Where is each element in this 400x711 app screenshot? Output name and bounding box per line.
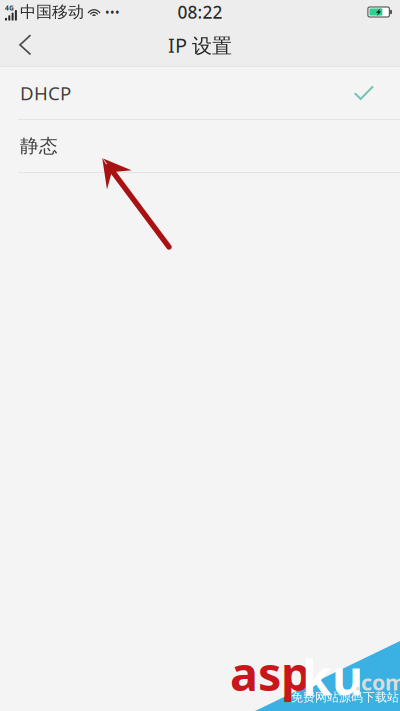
staticText: DHCP [20, 81, 71, 105]
staticText: 08:22 [177, 0, 222, 23]
staticText: IP 设置 [168, 32, 232, 58]
button[interactable]: Back [0, 24, 48, 65]
button[interactable]: 静态 [0, 120, 400, 172]
button[interactable]: DHCP [0, 67, 400, 119]
staticText: .com [355, 668, 400, 696]
staticText: ku [302, 645, 363, 709]
staticText: 免费网站源码下载站 [291, 690, 399, 705]
staticText: ••• [105, 4, 120, 20]
staticText: 静态 [20, 134, 58, 157]
staticText: 4G [5, 3, 14, 12]
staticText: asp [230, 642, 310, 704]
staticText: 中国移动 [20, 2, 84, 22]
